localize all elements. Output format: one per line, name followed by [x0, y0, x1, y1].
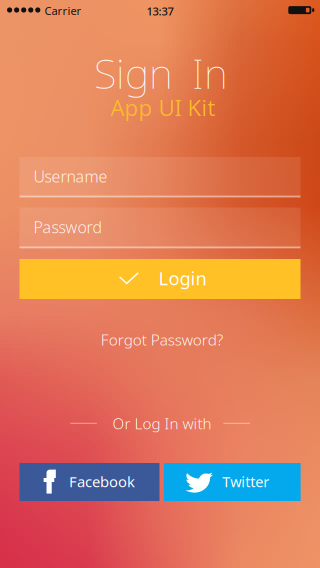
button[interactable]: Password — [19, 207, 300, 248]
staticText: Twitter — [222, 472, 269, 491]
staticText: Password — [33, 216, 102, 238]
staticText: Forgot Password? — [101, 329, 223, 350]
staticText: Sign — [94, 45, 173, 101]
staticText: Carrier — [44, 3, 81, 18]
staticText: In — [192, 45, 228, 101]
staticText: App UI Kit — [111, 92, 216, 122]
staticText: Facebook — [69, 471, 135, 492]
staticText: Username — [33, 165, 107, 187]
staticText: 13:37 — [146, 4, 173, 19]
button[interactable]: Username — [19, 157, 300, 197]
button[interactable]: Twitter — [164, 463, 301, 501]
staticText: Login — [159, 266, 207, 291]
button[interactable]: Facebook — [19, 463, 159, 501]
staticText: Or Log In with — [112, 413, 211, 434]
button[interactable]: Forgot Password? — [95, 323, 229, 356]
button[interactable]: Login — [19, 259, 300, 299]
